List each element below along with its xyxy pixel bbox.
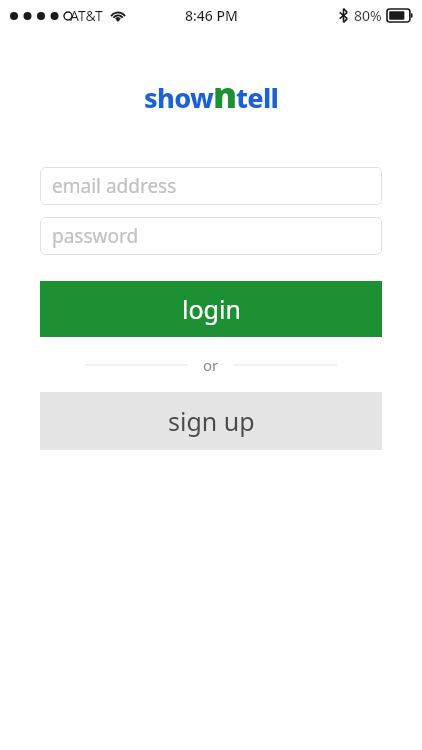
staticText: 8:46 PM (185, 6, 238, 25)
staticText: email address (52, 173, 177, 199)
staticText: showntell (144, 70, 279, 119)
button[interactable]: sign up (40, 392, 382, 450)
button[interactable]: email address (40, 167, 382, 205)
staticText: password (52, 223, 139, 249)
button[interactable]: login (40, 281, 382, 337)
staticText: 80% (354, 6, 382, 25)
staticText: or (203, 355, 219, 375)
staticText: login (182, 292, 241, 326)
staticText: AT&T (70, 6, 103, 25)
button[interactable]: password (40, 217, 382, 255)
staticText: sign up (168, 404, 255, 438)
